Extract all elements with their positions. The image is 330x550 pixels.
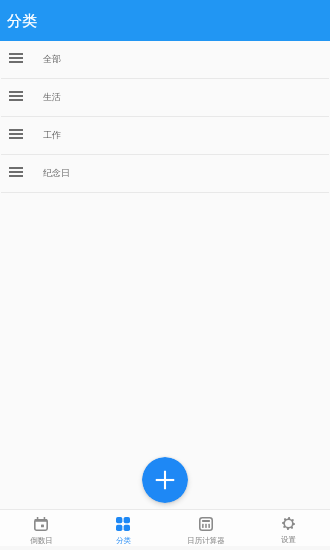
button[interactable]: 生活 [0, 79, 330, 117]
button[interactable]: 纪念日 [0, 155, 330, 193]
button[interactable]: 日历计算器 [164, 510, 247, 546]
button[interactable]: 全部 [0, 41, 330, 79]
staticText: 分类 [7, 12, 37, 31]
staticText: 日历计算器 [187, 536, 225, 545]
button[interactable]: 分类 [82, 510, 164, 546]
button[interactable]: 倒数日 [0, 510, 82, 546]
staticText: 分类 [116, 536, 131, 545]
button[interactable]: 工作 [0, 117, 330, 155]
staticText: 生活 [43, 91, 61, 102]
staticText: 倒数日 [30, 536, 53, 545]
staticText: 纪念日 [43, 167, 70, 178]
button[interactable]: Add [142, 457, 188, 503]
staticText: 工作 [43, 129, 61, 140]
staticText: 全部 [43, 53, 61, 64]
staticText: 设置 [281, 535, 296, 544]
button[interactable]: 设置 [247, 510, 330, 546]
